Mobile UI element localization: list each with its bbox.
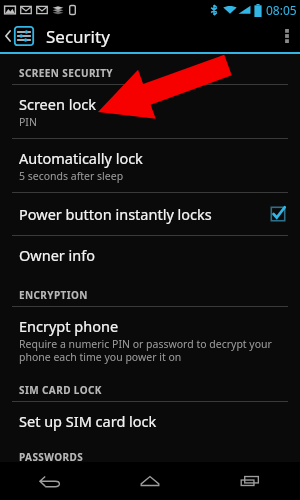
staticText: PIN [19, 115, 37, 129]
staticText: Owner info [19, 245, 96, 265]
button[interactable]: Home [100, 462, 200, 500]
button[interactable]: Automatically lock [0, 139, 300, 192]
staticText: PASSWORDS [19, 450, 84, 462]
staticText: SCREEN SECURITY [19, 66, 113, 80]
staticText: 5 seconds after sleep [19, 169, 124, 183]
staticText: Encrypt phone [19, 316, 119, 336]
staticText: Set up SIM card lock [19, 411, 157, 431]
button[interactable]: Recent apps [200, 462, 300, 500]
button[interactable]: Owner info [0, 236, 300, 274]
button[interactable]: Back [0, 462, 100, 500]
button[interactable]: Set up SIM card lock [0, 402, 300, 440]
staticText: SIM CARD LOCK [19, 383, 102, 397]
staticText: 08:05 [266, 2, 297, 18]
button[interactable]: Encrypt phone [0, 307, 300, 373]
staticText: Screen lock [19, 94, 96, 114]
staticText: Require a numeric PIN or password to dec… [19, 337, 286, 364]
button[interactable]: Navigate up [0, 20, 38, 52]
staticText: Power button instantly locks [19, 204, 270, 224]
staticText: Security [46, 25, 110, 48]
button[interactable]: More options [274, 20, 300, 52]
button[interactable]: Screen lock [0, 85, 300, 138]
staticText: Automatically lock [19, 148, 143, 168]
button[interactable]: Power button instantly locks [0, 193, 300, 235]
staticText: ENCRYPTION [19, 288, 88, 302]
